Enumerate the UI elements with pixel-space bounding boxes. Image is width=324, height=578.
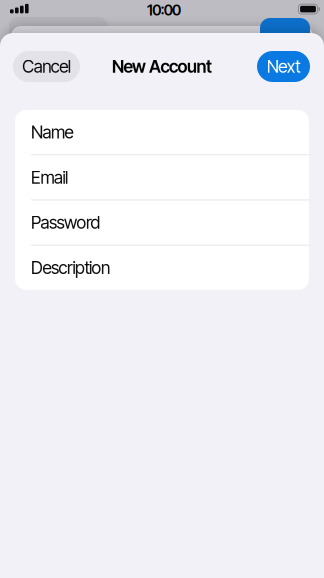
staticText: Password <box>31 212 100 233</box>
button[interactable]: Cancel <box>13 51 80 82</box>
button[interactable]: Password <box>15 200 309 245</box>
staticText: Email <box>31 167 68 187</box>
button[interactable]: Description <box>15 246 309 290</box>
staticText: Description <box>31 257 110 278</box>
button[interactable]: Name <box>15 110 309 154</box>
staticText: Cancel <box>22 56 71 77</box>
staticText: 10:00 <box>147 1 181 19</box>
staticText: Name <box>31 122 73 142</box>
staticText: New Account <box>112 56 212 77</box>
button[interactable]: Email <box>15 155 309 199</box>
button[interactable]: Next <box>257 51 310 82</box>
staticText: Next <box>267 56 300 77</box>
